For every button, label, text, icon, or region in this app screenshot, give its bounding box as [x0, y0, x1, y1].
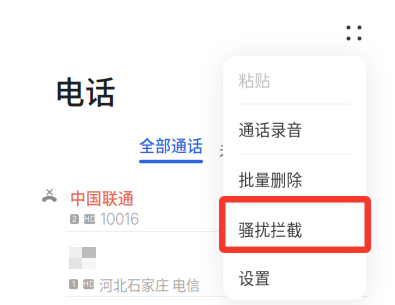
button[interactable]: More options — [338, 17, 370, 49]
button[interactable]: 设置 — [238, 254, 366, 300]
staticText: 2 — [72, 214, 77, 223]
staticText: 电话 — [54, 68, 116, 112]
staticText: 全部通话 — [139, 133, 203, 156]
staticText: 设置 — [238, 266, 270, 289]
button[interactable]: 骚扰拦截 — [238, 204, 366, 253]
button[interactable]: 中国联通 — [42, 186, 342, 230]
button[interactable]: 通话录音 — [238, 104, 366, 153]
button[interactable]: 批量删除 — [238, 154, 366, 203]
staticText: HD — [83, 280, 94, 289]
staticText: 中国联通 — [70, 186, 134, 209]
button[interactable]: 1 — [69, 247, 369, 293]
staticText: 通话录音 — [238, 118, 302, 140]
staticText: 10016 — [100, 210, 139, 228]
button[interactable]: 全部通话 — [139, 133, 203, 163]
staticText: 批量删除 — [238, 168, 302, 190]
staticText: 未接来电 — [219, 138, 283, 161]
staticText: HD — [84, 214, 95, 223]
staticText: 粘贴 — [238, 68, 270, 91]
staticText: 1 — [72, 280, 75, 289]
staticText: 河北石家庄 电信 — [99, 274, 200, 294]
staticText: 骚扰拦截 — [238, 218, 302, 240]
button[interactable]: 粘贴 — [238, 56, 366, 103]
